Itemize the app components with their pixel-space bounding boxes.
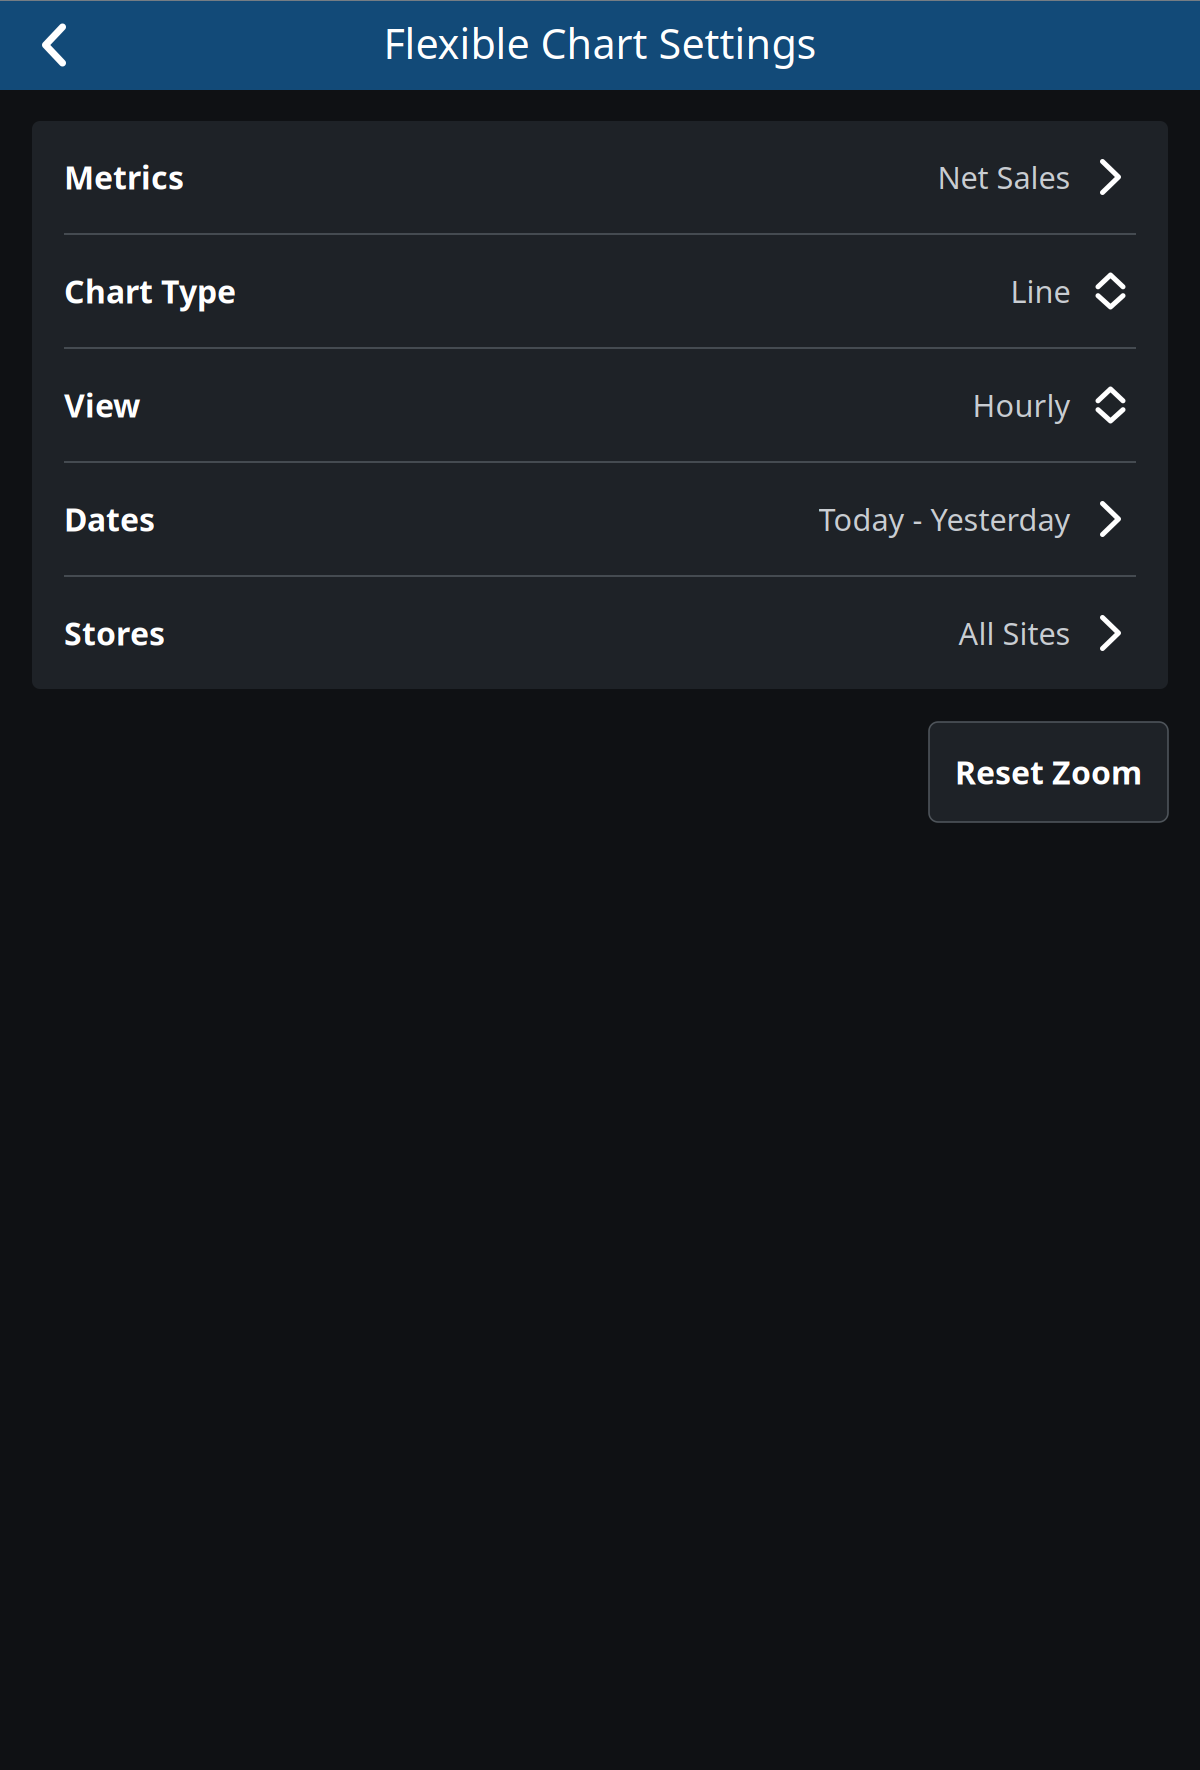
staticText: All Sites xyxy=(958,613,1070,653)
button[interactable]: Back xyxy=(0,0,96,90)
staticText: Net Sales xyxy=(937,157,1070,197)
button[interactable]: Metrics xyxy=(32,121,1168,233)
staticText: Today - Yesterday xyxy=(818,499,1070,539)
staticText: Dates xyxy=(64,498,155,540)
staticText: Reset Zoom xyxy=(955,751,1142,793)
button[interactable]: View xyxy=(32,349,1168,461)
staticText: Chart Type xyxy=(64,270,236,312)
staticText: Line xyxy=(1010,271,1070,311)
staticText: Metrics xyxy=(64,156,184,198)
staticText: Stores xyxy=(64,612,165,654)
staticText: Hourly xyxy=(972,385,1070,425)
staticText: View xyxy=(64,384,140,426)
button[interactable]: Stores xyxy=(32,577,1168,689)
staticText: Flexible Chart Settings xyxy=(383,16,816,70)
button[interactable]: Dates xyxy=(32,463,1168,575)
button[interactable]: Reset Zoom xyxy=(929,722,1168,822)
button[interactable]: Chart Type xyxy=(32,235,1168,347)
